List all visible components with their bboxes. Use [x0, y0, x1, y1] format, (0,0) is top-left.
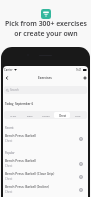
button[interactable]: Bench Press: Barbell — [3, 157, 88, 170]
staticText: Bench Press: Barbell (Close Grip) — [5, 172, 55, 176]
button[interactable]: Bench Press: Barbell (Close Grip) — [3, 170, 88, 183]
button[interactable]: Back — [3, 74, 10, 81]
button[interactable]: Info — [77, 135, 84, 142]
button[interactable]: Info — [77, 160, 84, 167]
staticText: Chest — [59, 114, 66, 117]
staticText: Arms — [10, 114, 17, 117]
button[interactable]: Info — [77, 173, 84, 180]
staticText: Search — [10, 88, 19, 92]
staticText: 9:41 — [76, 68, 82, 72]
staticText: Back — [27, 114, 33, 117]
staticText: Pick from 300+ exercises or create your … — [5, 19, 87, 38]
staticText: Cardio — [42, 114, 50, 117]
button[interactable]: Bench Press: Barbell (Incline) — [3, 183, 88, 196]
staticText: Carrier — [4, 68, 13, 72]
staticText: Bench Press: Barbell — [5, 134, 36, 138]
button[interactable]: Search — [4, 86, 87, 94]
staticText: Bench Press: Barbell (Incline) — [5, 185, 49, 189]
staticText: Exercises — [38, 76, 52, 80]
staticText: Today, September 6 — [5, 102, 34, 106]
button[interactable]: Arms — [5, 112, 22, 118]
staticText: Chest — [5, 139, 13, 143]
staticText: Bench Press: Barbell — [5, 159, 36, 163]
staticText: Core — [75, 114, 81, 117]
button[interactable]: Back — [22, 112, 38, 118]
button[interactable]: Core — [70, 112, 86, 118]
staticText: Chest — [5, 177, 13, 181]
staticText: Recent — [5, 126, 14, 130]
button[interactable]: Cardio — [38, 112, 54, 118]
button[interactable]: Chest — [54, 112, 70, 118]
button[interactable]: Info — [77, 186, 84, 193]
button[interactable]: Add exercise — [81, 74, 88, 81]
staticText: Popular — [5, 151, 15, 155]
staticText: Chest — [5, 190, 13, 194]
staticText: Chest — [5, 164, 13, 168]
button[interactable]: Bench Press: Barbell — [3, 132, 88, 145]
